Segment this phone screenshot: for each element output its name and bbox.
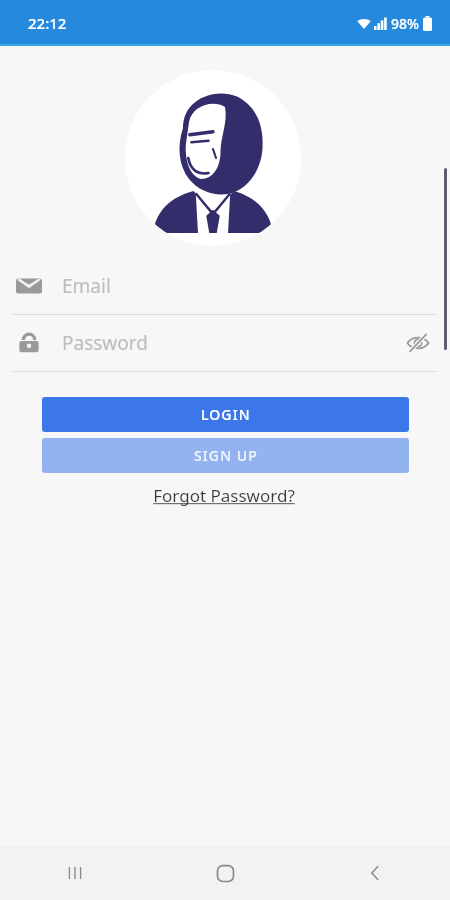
button[interactable]: Recents <box>0 846 150 900</box>
button[interactable]: Show password <box>400 325 436 361</box>
staticText: LOGIN <box>201 405 251 424</box>
staticText: Forgot Password? <box>153 484 295 507</box>
button[interactable]: Email <box>0 258 450 314</box>
button[interactable]: Password <box>0 315 450 371</box>
staticText: Password <box>62 330 400 356</box>
button[interactable]: Home <box>150 846 300 900</box>
button[interactable]: Back <box>300 846 450 900</box>
staticText: 98% <box>391 14 419 33</box>
staticText: 22:12 <box>28 13 67 33</box>
staticText: Email <box>62 273 436 299</box>
button[interactable]: LOGIN <box>42 397 409 432</box>
staticText: SIGN UP <box>194 446 258 465</box>
button[interactable]: SIGN UP <box>42 438 409 473</box>
button[interactable]: Forgot Password? <box>147 482 301 509</box>
